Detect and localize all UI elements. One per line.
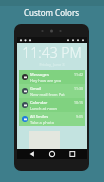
staticText: Lunch at noon [30,106,57,111]
staticText: Friday, June 3 [17,62,87,67]
button[interactable]: All Smiles [19,112,85,126]
button[interactable]: Messages [19,70,85,84]
staticText: Gmail [30,86,42,91]
staticText: Hey how are you [30,78,62,83]
staticText: Calendar [30,100,48,105]
staticText: 11:43 PM [17,43,87,62]
staticText: New mail from Pat [30,92,65,97]
staticText: All Smiles [30,114,49,119]
staticText: 11:42 [74,72,83,77]
staticText: 10:15 [74,100,83,105]
button[interactable]: Gmail [19,84,85,98]
staticText: Take a photo [30,120,55,125]
staticText: 11:30 [74,86,83,91]
button[interactable]: Calendar [19,98,85,112]
staticText: Messages [30,72,49,77]
staticText: Custom Colors [24,7,80,18]
staticText: 9:05 [76,114,83,119]
button[interactable]: Custom Colors [0,5,104,19]
